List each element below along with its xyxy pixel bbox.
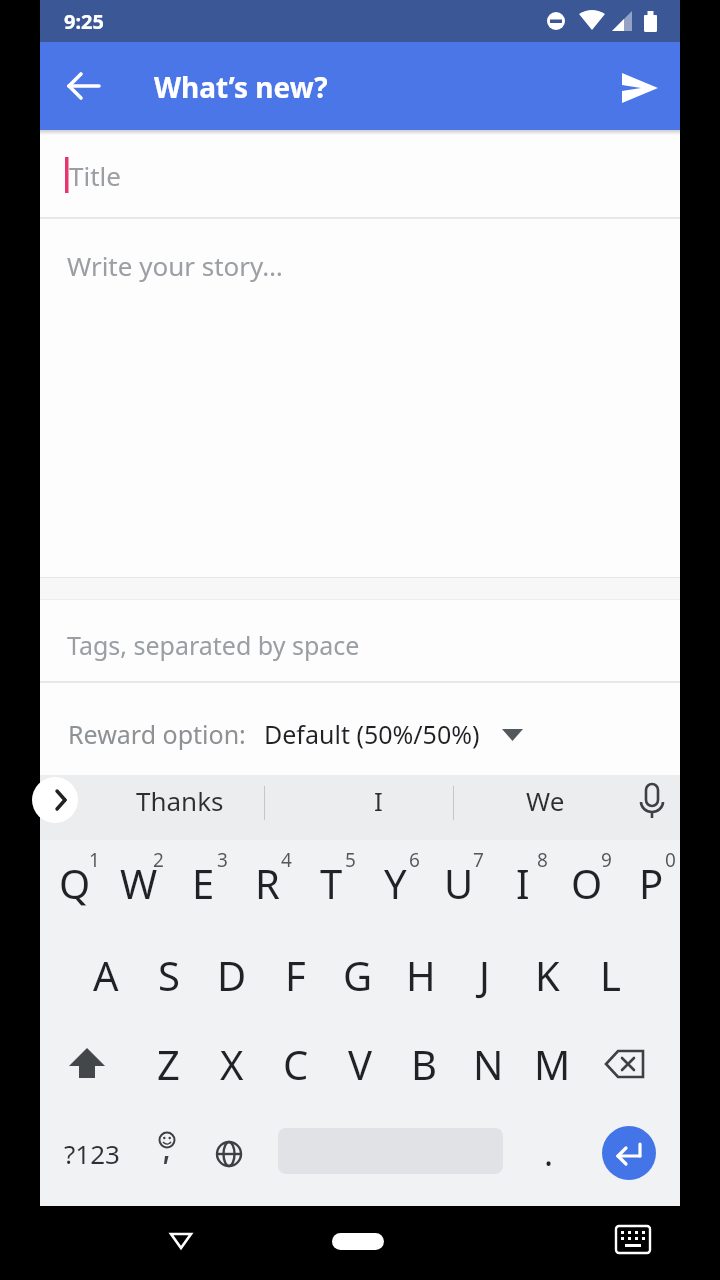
button[interactable]: I xyxy=(491,852,555,914)
button[interactable]: R xyxy=(235,852,299,914)
button[interactable]: V xyxy=(328,1033,392,1095)
button[interactable] xyxy=(40,683,680,775)
button[interactable] xyxy=(32,777,78,823)
button[interactable]: M xyxy=(520,1033,584,1095)
staticText: Q xyxy=(59,856,91,910)
staticText: U xyxy=(444,856,474,910)
button[interactable] xyxy=(595,1034,655,1094)
staticText: G xyxy=(343,948,373,1002)
staticText: W xyxy=(120,856,158,910)
staticText: 3 xyxy=(217,847,228,873)
button[interactable]: C xyxy=(264,1033,328,1095)
staticText: Default (50%/50%) xyxy=(264,717,480,751)
button[interactable] xyxy=(151,1211,211,1271)
staticText: X xyxy=(220,1037,244,1091)
staticText: 6 xyxy=(409,847,420,873)
button[interactable]: I xyxy=(298,775,458,825)
staticText: 7 xyxy=(473,847,484,873)
staticText: P xyxy=(639,856,664,910)
button[interactable] xyxy=(40,219,680,577)
button[interactable] xyxy=(616,64,664,112)
staticText: Reward option: xyxy=(68,717,246,751)
staticText: . xyxy=(544,1130,554,1176)
staticText: Y xyxy=(384,856,407,910)
button[interactable] xyxy=(628,769,676,831)
staticText: L xyxy=(600,948,621,1002)
staticText: A xyxy=(93,948,119,1002)
button[interactable]: ?123 xyxy=(56,1122,128,1184)
staticText: R xyxy=(255,856,280,910)
staticText: F xyxy=(285,948,306,1002)
button[interactable]: D xyxy=(201,944,263,1006)
button[interactable]: H xyxy=(390,944,452,1006)
staticText: 8 xyxy=(537,847,548,873)
button[interactable]: . xyxy=(525,1122,573,1184)
button[interactable] xyxy=(40,600,680,681)
staticText: 9 xyxy=(601,847,612,873)
staticText: Z xyxy=(157,1037,180,1091)
staticText: 2 xyxy=(153,847,164,873)
staticText: N xyxy=(473,1037,504,1091)
staticText: 4 xyxy=(281,847,292,873)
staticText: C xyxy=(283,1037,309,1091)
staticText: 0 xyxy=(665,847,676,873)
button[interactable] xyxy=(137,1122,197,1184)
button[interactable] xyxy=(60,62,108,110)
button[interactable] xyxy=(603,1210,663,1270)
button[interactable]: N xyxy=(456,1033,520,1095)
button[interactable]: Y xyxy=(363,852,427,914)
staticText: S xyxy=(158,948,180,1002)
staticText: V xyxy=(348,1037,372,1091)
button[interactable]: T xyxy=(299,852,363,914)
staticText: H xyxy=(406,948,436,1002)
button[interactable]: G xyxy=(327,944,389,1006)
button[interactable]: Q xyxy=(43,852,107,914)
button[interactable]: U xyxy=(427,852,491,914)
button[interactable] xyxy=(602,1126,656,1180)
staticText: Thanks xyxy=(136,783,224,818)
staticText: K xyxy=(535,948,560,1002)
button[interactable]: O xyxy=(555,852,619,914)
staticText: J xyxy=(479,948,490,1002)
button[interactable]: Thanks xyxy=(100,775,260,825)
button[interactable]: J xyxy=(453,944,515,1006)
staticText: 5 xyxy=(345,847,356,873)
button[interactable]: Z xyxy=(136,1033,200,1095)
staticText: I xyxy=(516,856,530,910)
button[interactable] xyxy=(57,1034,117,1094)
staticText: ?123 xyxy=(64,1136,120,1171)
staticText: Tags, separated by space xyxy=(67,628,360,662)
button[interactable]: X xyxy=(200,1033,264,1095)
staticText: I xyxy=(374,783,383,818)
button[interactable]: L xyxy=(579,944,641,1006)
button[interactable]: K xyxy=(516,944,578,1006)
button[interactable]: W xyxy=(107,852,171,914)
button[interactable]: B xyxy=(392,1033,456,1095)
staticText: What’s new? xyxy=(154,68,328,106)
staticText: We xyxy=(526,783,565,818)
staticText: T xyxy=(320,856,343,910)
staticText: M xyxy=(534,1037,571,1091)
button[interactable] xyxy=(40,131,680,217)
staticText: Title xyxy=(69,158,121,193)
staticText: E xyxy=(192,856,215,910)
button[interactable]: E xyxy=(171,852,235,914)
staticText: O xyxy=(571,856,603,910)
staticText: 1 xyxy=(89,847,100,873)
button[interactable] xyxy=(199,1122,259,1184)
button[interactable]: A xyxy=(75,944,137,1006)
staticText: B xyxy=(411,1037,437,1091)
button[interactable]: S xyxy=(138,944,200,1006)
button[interactable]: P xyxy=(619,852,683,914)
staticText: D xyxy=(217,948,247,1002)
button[interactable]: We xyxy=(465,775,625,825)
staticText: 9:25 xyxy=(64,8,104,35)
button[interactable]: F xyxy=(264,944,326,1006)
staticText: Write your story… xyxy=(67,248,283,283)
button[interactable] xyxy=(332,1233,384,1250)
